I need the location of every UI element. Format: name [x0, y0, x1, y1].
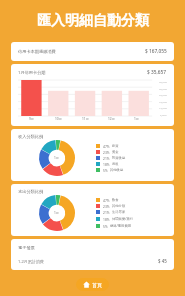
button[interactable]: 首頁	[76, 278, 109, 291]
staticText: 獎金	[112, 150, 119, 154]
staticText: 匯入明細自動分類	[37, 12, 149, 30]
staticText: 飲食	[112, 198, 119, 202]
staticText: 1月	[134, 117, 140, 121]
staticText: 23%	[103, 204, 110, 208]
staticText: 電子發票	[18, 245, 35, 250]
staticText: 休閒娛樂/旅行	[112, 216, 134, 221]
staticText: 21%	[103, 210, 110, 214]
staticText: 12月	[108, 117, 115, 121]
staticText: 24,000	[159, 93, 167, 96]
staticText: 30,000	[159, 87, 167, 90]
staticText: 18,000	[159, 100, 167, 103]
staticText: 首頁	[92, 282, 102, 288]
staticText: 47%	[103, 144, 110, 148]
staticText: 47%	[103, 198, 110, 202]
staticText: 1月	[54, 211, 60, 215]
staticText: 1-2月累計消費	[18, 259, 44, 264]
staticText: 信用卡本期應繳消費	[18, 49, 56, 54]
staticText: 其他分類	[112, 204, 126, 208]
staticText: 生活居家	[112, 210, 126, 214]
staticText: 9月	[29, 117, 35, 121]
staticText: 6,000	[160, 113, 167, 116]
staticText: 支出分類比例	[18, 189, 44, 194]
staticText: 5%	[103, 168, 108, 172]
staticText: 1月	[54, 156, 60, 160]
staticText: 18%	[103, 217, 110, 221]
staticText: 網路/電視費用	[110, 223, 132, 228]
staticText: 1月信用卡分期	[18, 70, 46, 76]
staticText: 36,000	[159, 80, 167, 83]
staticText: 5%	[103, 224, 108, 228]
staticText: 12,000	[159, 106, 167, 109]
staticText: $ 167,055	[145, 48, 167, 55]
staticText: 房租	[112, 162, 119, 166]
staticText: 薪資	[112, 144, 119, 148]
staticText: 11月	[82, 117, 89, 121]
button[interactable]: 信用卡本期應繳消費	[11, 42, 174, 61]
staticText: 23%	[103, 150, 110, 154]
button[interactable]: 收入分類比例	[11, 129, 174, 181]
staticText: 其他收益	[110, 168, 124, 172]
staticText: 10月	[55, 117, 62, 121]
button[interactable]: 1月信用卡分期	[11, 64, 174, 126]
button[interactable]: 支出分類比例	[11, 184, 174, 236]
staticText: 收入分類比例	[18, 134, 44, 139]
staticText: 投資收益	[112, 156, 126, 160]
button[interactable]: 電子發票	[11, 239, 174, 270]
staticText: 18%	[103, 162, 110, 166]
staticText: $ 45	[158, 258, 167, 264]
staticText: $ 35,657	[147, 69, 167, 76]
staticText: 21%	[103, 156, 110, 160]
